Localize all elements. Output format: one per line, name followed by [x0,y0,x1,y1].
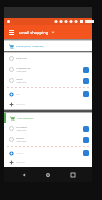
staticText: Milk [16,93,21,96]
button[interactable]: Add item [4,99,92,109]
button[interactable]: Recent apps [68,170,78,180]
staticText: Fruit vegetables [17,117,34,120]
staticText: 1 Piece $0.00 [16,81,27,83]
button[interactable]: Item note [83,67,89,73]
staticText: 1 Piece $0.00 [16,70,27,72]
button[interactable]: Item note [83,150,89,156]
button[interactable]: Home [43,170,53,180]
button[interactable]: 4 items ($5.00, 2 items left) [4,41,92,51]
staticText: 1 Piece $0.00 [16,129,27,131]
staticText: Apples [16,152,23,155]
button[interactable]: Milk [4,89,92,99]
staticText: Add item [16,103,25,106]
staticText: 4 items ($5.00, 2 items left) [16,45,44,48]
button[interactable]: Item note [83,91,89,97]
staticText: Add item [16,161,25,164]
button[interactable]: Back [19,170,29,180]
button[interactable]: Item note [83,126,89,132]
button[interactable]: Yogurt [4,75,92,86]
button[interactable]: Add item [4,158,92,167]
staticText: small shopping [19,30,49,35]
button[interactable]: Aluminium foil [4,64,92,75]
button[interactable]: Other stuff [4,53,92,64]
staticText: Spinach [16,137,24,140]
staticText: Other stuff [16,57,27,60]
staticText: 1 Piece $0.00 [16,140,27,142]
button[interactable]: Item note [83,78,89,84]
button[interactable]: Apples [4,148,92,158]
button[interactable]: Open navigation menu [6,27,16,37]
staticText: Yogurt [16,78,23,81]
staticText: Cucumbers [16,126,28,129]
staticText: Aluminium foil [16,67,31,70]
button[interactable]: Cucumbers [4,123,92,134]
button[interactable]: Spinach [4,134,92,145]
button[interactable]: Item note [83,137,89,143]
button[interactable]: Fruit vegetables [4,113,92,123]
